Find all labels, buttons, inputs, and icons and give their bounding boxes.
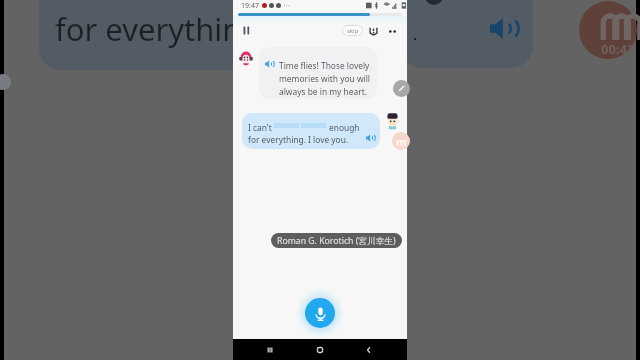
staticText: enough [329,122,360,133]
button[interactable]: Back [359,339,379,360]
button[interactable]: Home [310,339,330,360]
staticText: ⋯ [283,2,290,10]
button[interactable]: Edit [393,80,410,97]
button[interactable]: Pause [238,22,254,38]
button[interactable]: Recents [260,339,280,360]
staticText: m [396,134,407,149]
staticText: 19:47 [241,1,259,10]
staticText: Time flies! Those lovely memories with y… [279,60,371,97]
button[interactable]: Roman G. Korotich (宮川幸生) [271,233,402,248]
staticText: I can't [248,122,272,133]
button[interactable]: Time flies! Those lovely memories with y… [259,47,377,99]
button[interactable]: I can't [242,113,380,149]
button[interactable]: Report [367,24,380,37]
staticText: 00:42 [601,40,635,58]
button[interactable]: More options [385,24,399,38]
button[interactable]: skip [342,25,363,36]
button[interactable]: Record voice message [305,298,335,328]
staticText: skip [347,27,359,35]
staticText: Roman G. Korotich (宮川幸生) [277,235,396,247]
staticText: for everything. I love you. [248,134,349,145]
staticText: for everythin [55,8,242,50]
